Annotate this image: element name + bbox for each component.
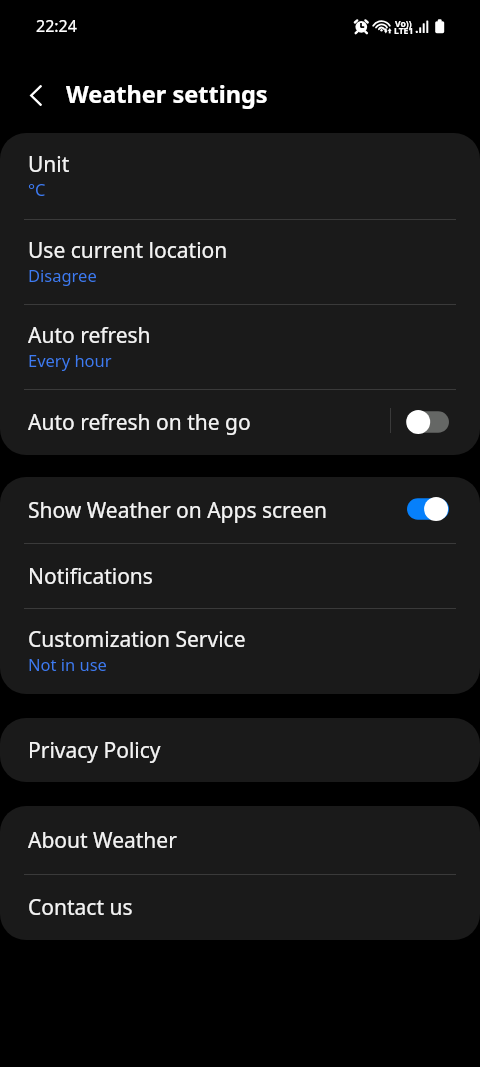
button[interactable]: About Weather xyxy=(0,806,480,874)
staticText: Customization Service xyxy=(28,625,246,654)
staticText: Privacy Policy xyxy=(28,736,161,765)
button[interactable]: Use current location xyxy=(0,220,480,304)
button[interactable]: Auto refresh xyxy=(0,305,480,389)
button[interactable]: Contact us xyxy=(0,875,480,940)
button[interactable]: Switch off xyxy=(406,409,450,435)
staticText: Contact us xyxy=(28,893,133,922)
button[interactable]: Customization Service xyxy=(0,609,480,694)
staticText: Disagree xyxy=(28,264,97,286)
button[interactable]: Show Weather on Apps screen xyxy=(0,477,480,543)
staticText: Auto refresh xyxy=(28,321,151,350)
staticText: Unit xyxy=(28,150,70,179)
button[interactable]: Privacy Policy xyxy=(0,718,480,782)
staticText: Auto refresh on the go xyxy=(28,408,251,437)
staticText: Use current location xyxy=(28,236,228,265)
staticText: Not in use xyxy=(28,653,107,675)
staticText: Show Weather on Apps screen xyxy=(28,496,327,525)
staticText: 22:24 xyxy=(36,15,77,37)
button[interactable]: Back xyxy=(4,63,68,127)
button[interactable]: Auto refresh on the go xyxy=(0,390,480,455)
staticText: Vo)) xyxy=(395,18,412,30)
button[interactable]: Unit xyxy=(0,133,480,219)
staticText: Weather settings xyxy=(66,78,268,110)
button[interactable]: Switch on xyxy=(406,496,450,522)
staticText: °C xyxy=(28,178,46,200)
staticText: About Weather xyxy=(28,826,177,855)
staticText: Notifications xyxy=(28,562,153,591)
button[interactable]: Notifications xyxy=(0,544,480,608)
staticText: LTE1 xyxy=(394,25,414,37)
staticText: Every hour xyxy=(28,349,112,371)
